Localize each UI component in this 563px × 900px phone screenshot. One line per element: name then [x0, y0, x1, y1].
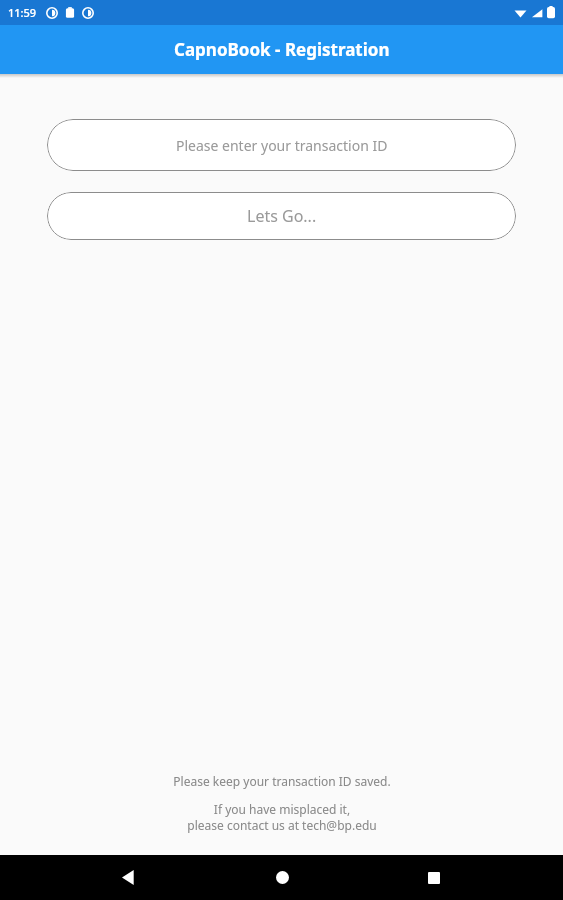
staticText: CapnoBook - Registration: [174, 38, 390, 61]
staticText: Please enter your transaction ID: [176, 136, 388, 155]
button[interactable]: Back: [105, 855, 153, 900]
staticText: Please keep your transaction ID saved.: [173, 773, 391, 789]
staticText: Lets Go...: [247, 205, 317, 227]
button[interactable]: Home: [258, 855, 306, 900]
staticText: If you have misplaced it, please contact…: [187, 801, 377, 833]
staticText: 11:59: [8, 5, 37, 20]
button[interactable]: Lets Go...: [47, 192, 516, 240]
button[interactable]: Please enter your transaction ID: [47, 119, 516, 171]
button[interactable]: Recent apps: [410, 855, 458, 900]
